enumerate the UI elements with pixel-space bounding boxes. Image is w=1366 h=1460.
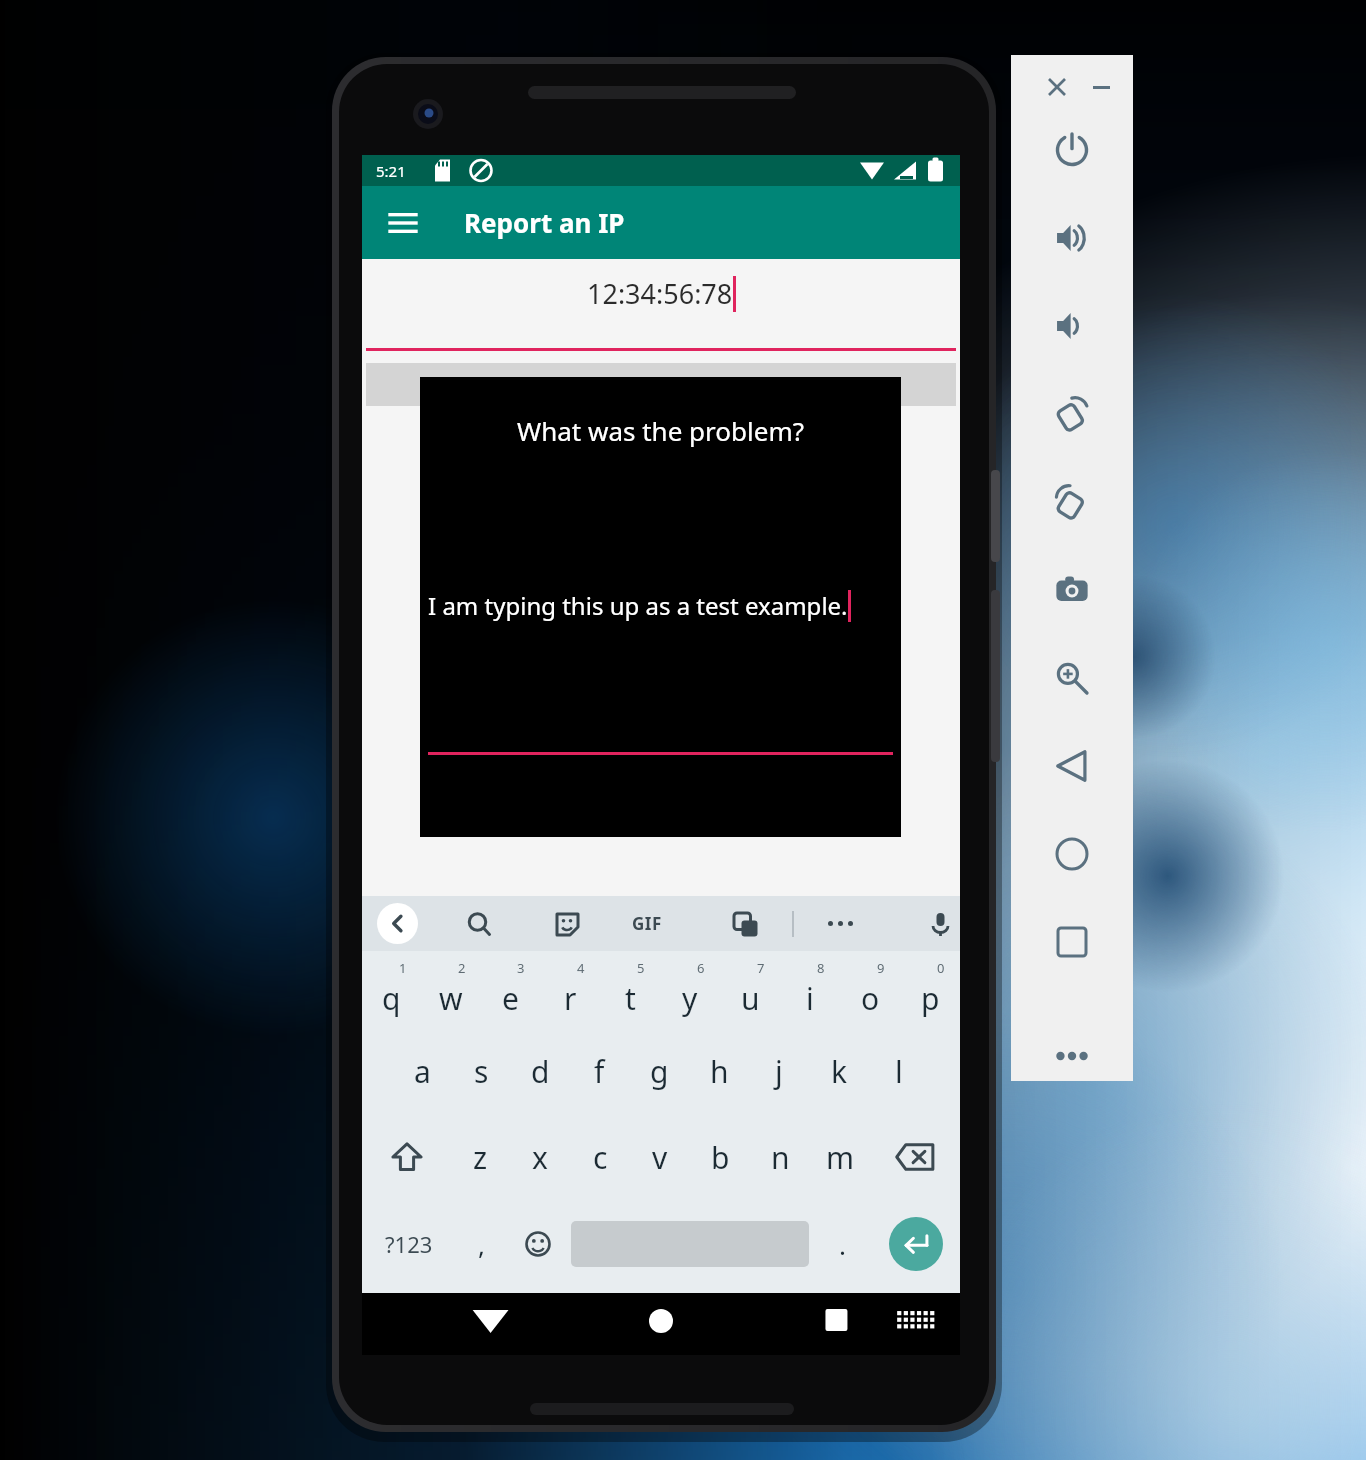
staticText: e xyxy=(502,978,519,1019)
staticText: . xyxy=(839,1227,846,1262)
button[interactable]: b xyxy=(690,1113,750,1201)
button[interactable]: Take screenshot xyxy=(1043,561,1101,619)
staticText: c xyxy=(593,1137,608,1178)
button[interactable]: Close xyxy=(1037,67,1077,107)
staticText: f xyxy=(594,1051,605,1092)
button[interactable]: Back xyxy=(1043,737,1101,795)
button[interactable]: a xyxy=(393,1029,452,1113)
button[interactable]: d xyxy=(511,1029,570,1113)
button[interactable]: x xyxy=(510,1113,570,1201)
staticText: v xyxy=(652,1137,668,1178)
button[interactable]: 8 xyxy=(780,957,840,1029)
staticText: a xyxy=(414,1051,431,1092)
button[interactable]: Rotate left xyxy=(1043,385,1101,443)
staticText: 3 xyxy=(517,959,525,977)
button[interactable]: 1 xyxy=(362,957,421,1029)
button[interactable]: Switch keyboard xyxy=(860,1293,960,1355)
staticText: REPORT IP ADDRESS xyxy=(572,373,750,396)
button[interactable]: Search xyxy=(458,903,500,945)
staticText: 0 xyxy=(937,959,945,977)
staticText: l xyxy=(895,1051,903,1092)
button[interactable]: l xyxy=(869,1029,929,1113)
staticText: m xyxy=(826,1137,855,1178)
staticText: 4 xyxy=(577,959,585,977)
staticText: Report an IP xyxy=(464,205,625,240)
button[interactable]: Translate xyxy=(724,903,766,945)
button[interactable]: ?123 xyxy=(362,1201,455,1287)
button[interactable]: h xyxy=(689,1029,749,1113)
button[interactable]: f xyxy=(570,1029,629,1113)
staticText: z xyxy=(473,1137,488,1178)
staticText: 6 xyxy=(697,959,705,977)
button[interactable]: Overview xyxy=(1043,913,1101,971)
staticText: b xyxy=(711,1137,730,1178)
staticText: w xyxy=(439,978,463,1019)
button[interactable]: . xyxy=(813,1201,872,1287)
button[interactable]: 2 xyxy=(421,957,480,1029)
staticText: k xyxy=(831,1051,848,1092)
button[interactable]: Rotate right xyxy=(1043,473,1101,531)
button[interactable]: Backspace xyxy=(870,1113,960,1201)
staticText: 5:21 xyxy=(376,161,406,181)
button[interactable]: Volume down xyxy=(1043,297,1101,355)
button[interactable]: Zoom xyxy=(1043,649,1101,707)
button[interactable]: 9 xyxy=(840,957,900,1029)
staticText: 7 xyxy=(757,959,765,977)
button[interactable]: z xyxy=(451,1113,510,1201)
button[interactable]: 3 xyxy=(480,957,540,1029)
button[interactable]: 5 xyxy=(600,957,660,1029)
staticText: h xyxy=(710,1051,729,1092)
button[interactable]: Minimize xyxy=(1081,67,1121,107)
staticText: 1 xyxy=(399,959,407,977)
staticText: y xyxy=(682,978,698,1019)
staticText: n xyxy=(771,1137,790,1178)
button[interactable]: n xyxy=(750,1113,810,1201)
staticText: 8 xyxy=(817,959,825,977)
button[interactable]: 4 xyxy=(540,957,600,1029)
button[interactable]: j xyxy=(749,1029,809,1113)
button[interactable]: g xyxy=(629,1029,689,1113)
button[interactable]: Hide keyboard xyxy=(362,1293,528,1355)
button[interactable]: , xyxy=(455,1201,508,1287)
staticText: g xyxy=(650,1051,669,1092)
button[interactable]: More options xyxy=(828,921,853,926)
button[interactable]: Back xyxy=(377,903,418,944)
button[interactable]: 6 xyxy=(660,957,720,1029)
staticText: What was the problem? xyxy=(517,413,804,448)
button[interactable]: v xyxy=(630,1113,690,1201)
staticText: x xyxy=(532,1137,548,1178)
button[interactable]: REPORT IP ADDRESS xyxy=(366,363,956,406)
button[interactable]: Shift xyxy=(362,1113,451,1201)
button[interactable]: Home xyxy=(528,1293,694,1355)
button[interactable]: k xyxy=(809,1029,869,1113)
button[interactable]: s xyxy=(452,1029,511,1113)
button[interactable]: c xyxy=(570,1113,630,1201)
button[interactable]: More xyxy=(1043,1027,1101,1085)
staticText: j xyxy=(775,1051,783,1092)
staticText: 12:34:56:78 xyxy=(587,275,733,312)
button[interactable]: Home xyxy=(1043,825,1101,883)
staticText: I am typing this up as a test example. xyxy=(428,589,848,622)
staticText: q xyxy=(382,978,401,1019)
button[interactable]: Recents xyxy=(694,1293,860,1355)
button[interactable]: 7 xyxy=(720,957,780,1029)
button[interactable]: Volume up xyxy=(1043,209,1101,267)
button[interactable]: Power xyxy=(1043,121,1101,179)
staticText: d xyxy=(531,1051,550,1092)
button[interactable]: 0 xyxy=(900,957,960,1029)
staticText: o xyxy=(861,978,880,1019)
button[interactable]: GIF xyxy=(632,912,662,935)
button[interactable]: m xyxy=(810,1113,870,1201)
staticText: , xyxy=(478,1227,485,1262)
button[interactable]: Voice input xyxy=(920,903,960,945)
staticText: ?123 xyxy=(385,1229,433,1259)
button[interactable]: Open navigation menu xyxy=(382,202,424,244)
button[interactable]: Emoji xyxy=(508,1201,567,1287)
staticText: s xyxy=(474,1051,489,1092)
staticText: 9 xyxy=(877,959,885,977)
staticText: 5 xyxy=(637,959,645,977)
button[interactable]: Stickers xyxy=(546,903,588,945)
staticText: 2 xyxy=(458,959,466,977)
button[interactable]: Enter xyxy=(889,1217,943,1271)
